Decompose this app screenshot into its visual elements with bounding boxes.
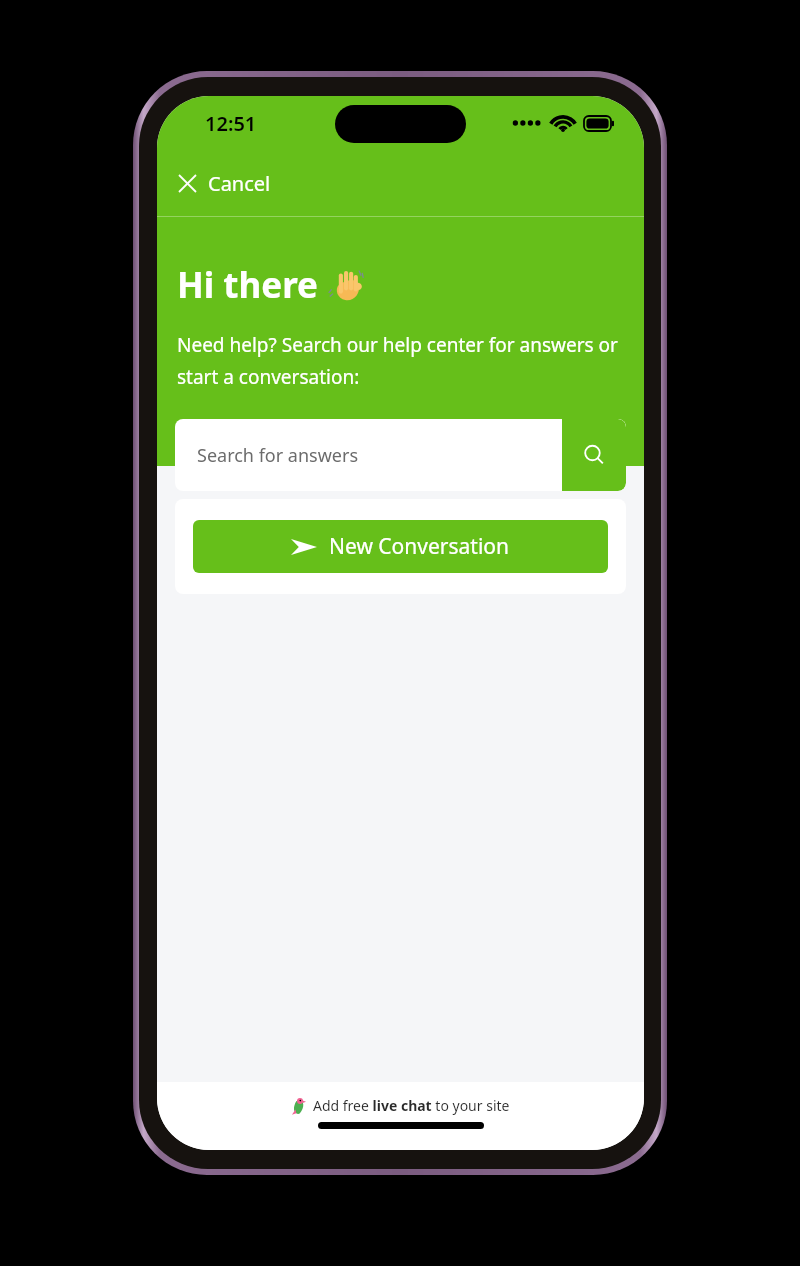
button[interactable]: Add free live chat to your site	[291, 1096, 510, 1115]
staticText: 12:51	[205, 110, 257, 137]
button[interactable]: Cancel	[157, 150, 644, 216]
staticText: Add free live chat to your site	[313, 1096, 510, 1115]
staticText: Search for answers	[197, 443, 359, 468]
button[interactable]: Search	[562, 419, 626, 491]
staticText: Need help? Search our help center for an…	[177, 332, 624, 390]
button[interactable]: New Conversation	[193, 520, 608, 573]
staticText: New Conversation	[329, 532, 510, 561]
staticText: Cancel	[208, 170, 271, 197]
staticText: Hi there	[177, 261, 328, 309]
